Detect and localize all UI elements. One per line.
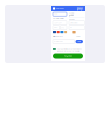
staticText: $49.00: [75, 36, 80, 37]
staticText: Promo code: [54, 41, 63, 42]
button[interactable]: Apply: [75, 40, 83, 43]
button[interactable]: Pay $49.00: [53, 53, 83, 58]
staticText: Country: [69, 19, 75, 20]
staticText: Checkout: [56, 8, 64, 9]
staticText: Your payment is secured end to end: [57, 48, 82, 50]
staticText: Pay $49.00: [64, 55, 72, 57]
staticText: Subtotal: [69, 12, 74, 14]
staticText: Apply: [77, 41, 81, 42]
staticText: Billing address: [53, 36, 63, 37]
staticText: We never store your card details: [57, 50, 80, 52]
staticText: United States: [70, 22, 78, 24]
staticText: pay: [77, 7, 83, 10]
staticText: Card information: [53, 18, 64, 19]
staticText: $49.00: [69, 14, 74, 16]
staticText: MM/YY: [54, 27, 58, 29]
staticText: ZIP: [70, 27, 72, 29]
staticText: 1234 1234: [54, 22, 62, 24]
